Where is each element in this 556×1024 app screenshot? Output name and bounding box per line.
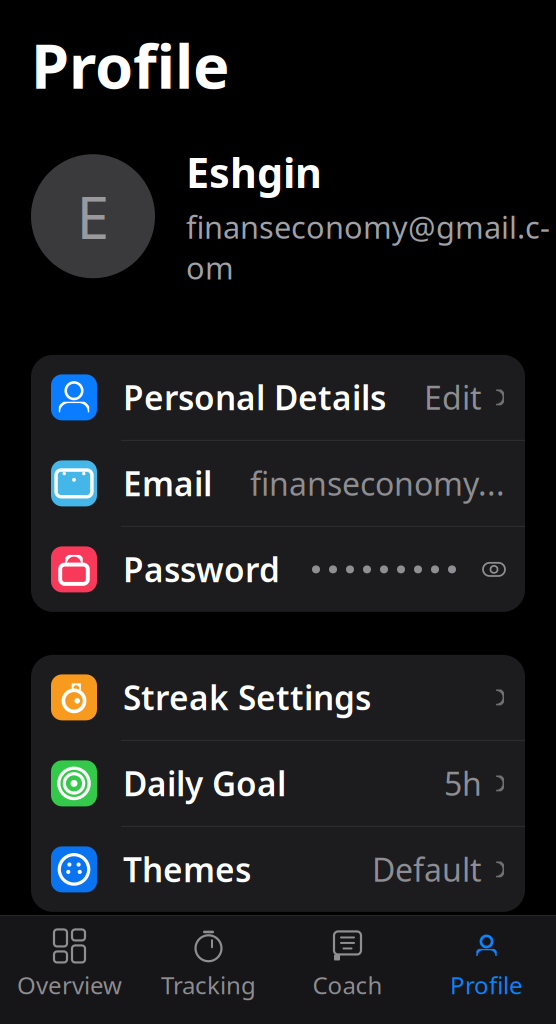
staticText: Themes: [123, 847, 251, 892]
button[interactable]: Profile: [417, 916, 556, 1001]
staticText: Daily Goal: [123, 761, 286, 806]
staticText: Profile: [31, 24, 230, 105]
staticText: finanseconomy...: [250, 462, 505, 505]
staticText: Overview: [17, 969, 122, 1001]
button[interactable]: Streak Settings: [31, 655, 525, 741]
button[interactable]: Themes: [31, 827, 525, 912]
staticText: Coach: [312, 969, 382, 1001]
button[interactable]: Overview: [0, 916, 139, 1001]
button[interactable]: Daily Goal: [31, 741, 525, 827]
button[interactable]: Tracking: [139, 916, 278, 1001]
staticText: Email: [123, 461, 212, 506]
staticText: Password: [123, 547, 280, 592]
staticText: Personal Details: [123, 375, 386, 420]
button[interactable]: Coach: [278, 916, 417, 1001]
staticText: 5h: [444, 762, 482, 805]
button[interactable]: Personal Details: [31, 355, 525, 441]
button[interactable]: Password: [31, 527, 525, 612]
staticText: Streak Settings: [123, 675, 371, 720]
button[interactable]: Email: [31, 441, 525, 527]
staticText: Edit: [424, 376, 482, 419]
staticText: Default: [372, 848, 482, 891]
staticText: Tracking: [161, 969, 256, 1001]
staticText: finanseconomy@gmail.com: [186, 206, 550, 288]
staticText: Eshgin: [186, 145, 322, 199]
staticText: E: [76, 177, 109, 255]
staticText: Profile: [450, 969, 523, 1001]
